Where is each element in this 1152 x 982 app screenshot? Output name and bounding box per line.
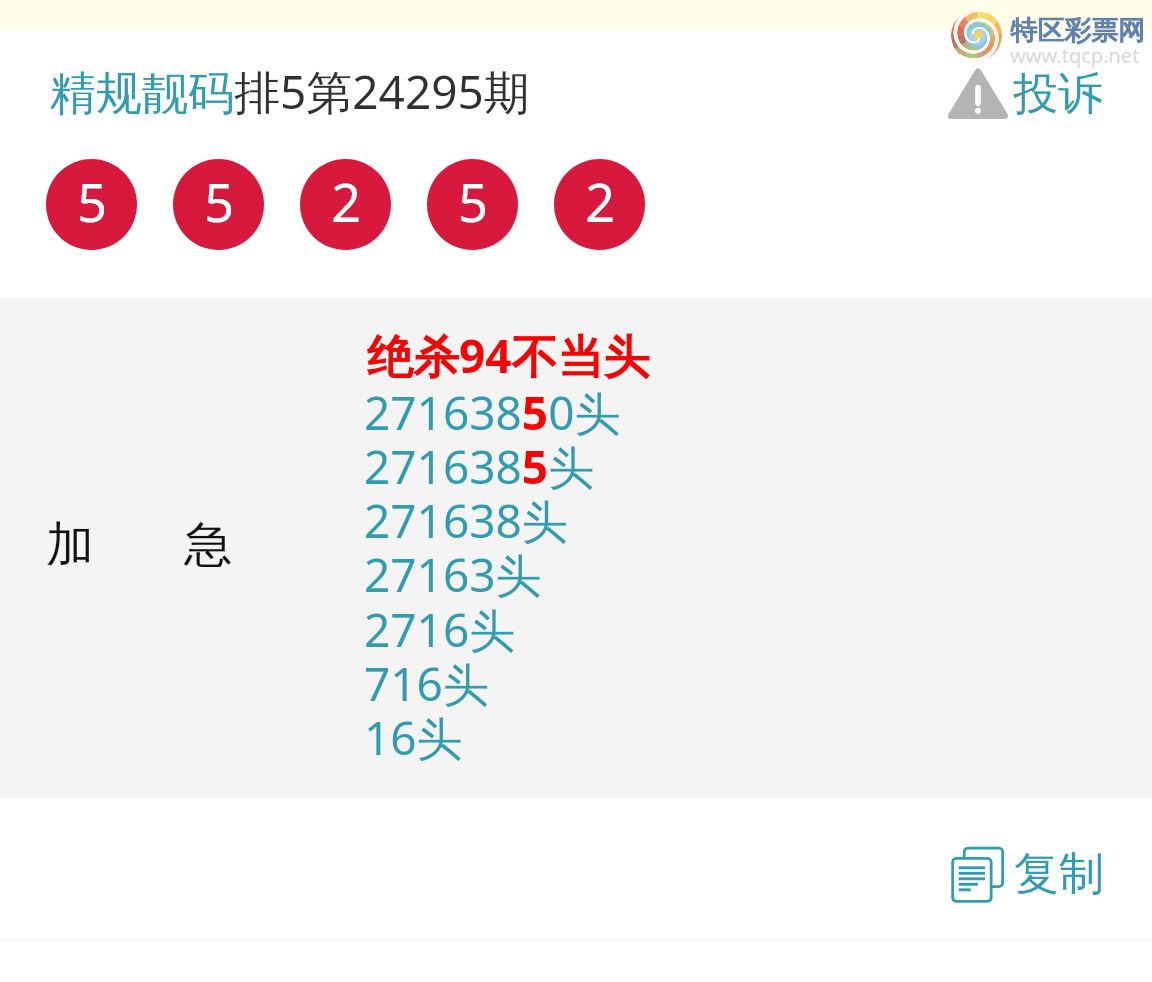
button[interactable]: 投诉 xyxy=(948,66,1103,123)
staticText: 716头 xyxy=(364,652,489,715)
button[interactable]: 复制 xyxy=(951,846,1104,903)
staticText: 27163头 xyxy=(364,543,542,606)
staticText: 5 xyxy=(458,166,488,237)
staticText: 投诉 xyxy=(1013,66,1103,123)
button[interactable]: 特区彩票网 xyxy=(946,4,1152,66)
staticText: 271638头 xyxy=(364,489,568,552)
staticText: 复制 xyxy=(1014,846,1104,903)
staticText: 27163850头 xyxy=(364,381,621,444)
other: 投诉 xyxy=(948,70,1008,119)
staticText: 2716385头 xyxy=(364,435,595,498)
staticText: 5 xyxy=(204,166,234,237)
staticText: 16头 xyxy=(364,706,463,769)
button[interactable]: 2 xyxy=(300,159,391,250)
staticText: 加 xyxy=(46,515,94,575)
staticText: 2 xyxy=(331,166,361,237)
staticText: 2 xyxy=(585,166,615,237)
staticText: 精规靓码排5第24295期 xyxy=(50,60,530,123)
button[interactable]: 5 xyxy=(173,159,264,250)
button[interactable] xyxy=(0,298,1152,798)
staticText: 急 xyxy=(184,515,232,575)
staticText: 绝杀94不当头 xyxy=(367,324,650,387)
button[interactable]: 5 xyxy=(427,159,518,250)
staticText: 特区彩票网 xyxy=(1010,14,1145,48)
staticText: 5 xyxy=(77,166,107,237)
staticText: www.tqcp.net xyxy=(1010,42,1140,69)
button[interactable]: 2 xyxy=(554,159,645,250)
button[interactable]: 5 xyxy=(46,159,137,250)
staticText: 2716头 xyxy=(364,598,516,661)
other: 复制 xyxy=(951,848,1006,902)
